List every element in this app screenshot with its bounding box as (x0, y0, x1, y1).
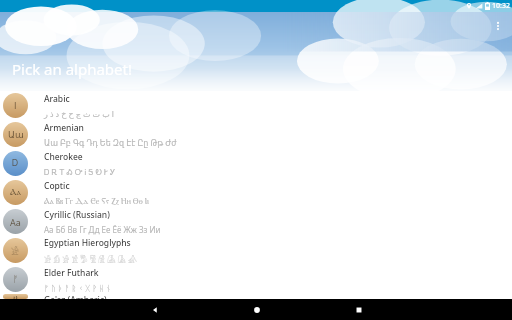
staticText: Armenian (44, 122, 84, 134)
staticText: Աա Բբ Գգ Դդ Եե Զզ Էէ Ըը Թթ Ժժ (44, 137, 177, 148)
staticText: ሀ (13, 294, 18, 299)
button[interactable]: Ⲁⲁ (0, 178, 512, 207)
staticText: Аа (10, 216, 21, 228)
button[interactable]: Аа (0, 207, 512, 236)
button[interactable]: Back (103, 299, 206, 320)
staticText: ا ب ت ث ج ح خ د ذ ر (44, 108, 115, 119)
staticText: Ⲁⲁ (10, 188, 21, 197)
staticText: Coptic (44, 180, 70, 192)
button[interactable]: Ꭰ (0, 149, 512, 178)
staticText: Ge'ez (Amharic) (44, 294, 107, 299)
button[interactable]: 𓀀 (0, 236, 512, 265)
button[interactable]: Home (206, 299, 308, 320)
button[interactable]: ᚠ (0, 265, 512, 294)
staticText: 𓀀 𓀁 𓀂 𓀃 𓀄 𓀅 𓀆 𓀇 𓀈 𓀉 (44, 252, 138, 265)
staticText: Аа Бб Вв Гг Дд Ее Ёё Жж Зз Ии (44, 224, 161, 235)
button[interactable]: More options (487, 15, 509, 37)
button[interactable]: Աա (0, 120, 512, 149)
staticText: Egyptian Hieroglyphs (44, 237, 131, 249)
button[interactable]: Recents (308, 299, 410, 320)
button[interactable]: ا (0, 91, 512, 120)
staticText: 𓀀 (11, 243, 20, 258)
staticText: Աա (8, 130, 24, 140)
staticText: ᚠ (13, 275, 19, 284)
staticText: Elder Futhark (44, 267, 99, 279)
staticText: Arabic (44, 93, 70, 105)
staticText: Ⲁⲁ Ⲃⲃ Ⲅⲅ Ⲇⲇ Ⲉⲉ Ⲋⲋ Ⲍⲍ Ⲏⲏ Ⲑⲑ Ⲓⲓ (44, 195, 149, 206)
staticText: Ꭰ (12, 159, 19, 168)
staticText: Cherokee (44, 151, 83, 163)
staticText: ا (14, 101, 17, 111)
staticText: ᚠ ᚢ ᚦ ᚨ ᚱ ᚲ ᚷ ᚹ ᚺ ᚾ (44, 282, 111, 293)
staticText: Cyrillic (Russian) (44, 209, 110, 221)
staticText: Ꭰ Ꭱ Ꭲ Ꭳ Ꭴ Ꭵ Ꭶ Ꭷ Ꭸ Ꭹ (44, 166, 116, 177)
staticText: 10:32 (492, 1, 510, 11)
staticText: Pick an alphabet! (12, 59, 132, 79)
button[interactable]: ሀ (0, 294, 512, 299)
